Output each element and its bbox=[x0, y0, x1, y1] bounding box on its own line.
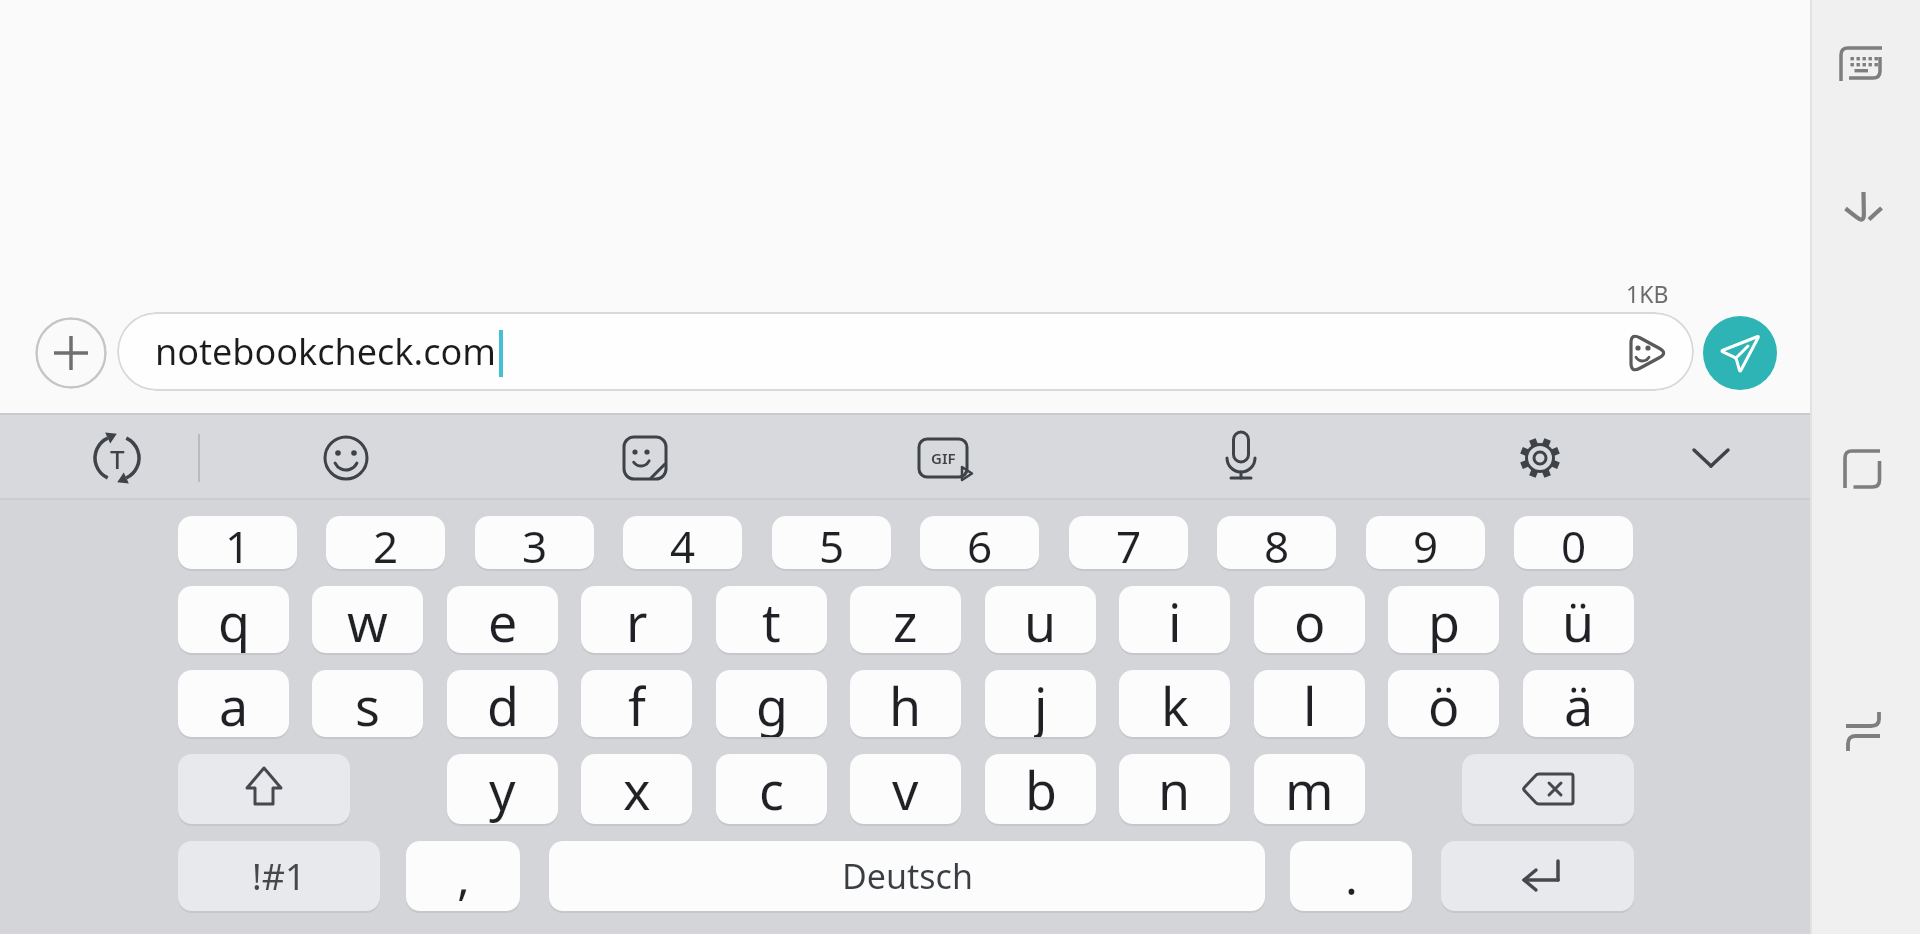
button[interactable] bbox=[1201, 418, 1281, 498]
button[interactable] bbox=[1823, 169, 1903, 249]
button[interactable]: z bbox=[850, 586, 961, 653]
button[interactable]: 6 bbox=[920, 516, 1039, 569]
staticText: T bbox=[110, 441, 125, 476]
staticText: o bbox=[1294, 586, 1326, 653]
staticText: 9 bbox=[1413, 516, 1439, 569]
button[interactable] bbox=[1615, 321, 1679, 385]
button[interactable] bbox=[1823, 691, 1903, 771]
button[interactable] bbox=[1671, 418, 1751, 498]
staticText: u bbox=[1024, 586, 1057, 653]
staticText: n bbox=[1158, 754, 1191, 824]
button[interactable] bbox=[1500, 418, 1580, 498]
button[interactable]: ä bbox=[1523, 670, 1634, 737]
button[interactable]: notebookcheck.com bbox=[117, 312, 1694, 391]
staticText: q bbox=[218, 586, 250, 653]
staticText: 0 bbox=[1561, 516, 1587, 569]
staticText: !#1 bbox=[252, 852, 306, 901]
button[interactable]: 8 bbox=[1217, 516, 1336, 569]
staticText: s bbox=[355, 670, 380, 737]
button[interactable]: w bbox=[312, 586, 423, 653]
button[interactable] bbox=[903, 418, 983, 498]
staticText: z bbox=[893, 586, 918, 653]
button[interactable]: k bbox=[1119, 670, 1230, 737]
button[interactable] bbox=[1462, 754, 1634, 824]
staticText: v bbox=[892, 754, 919, 824]
button[interactable]: h bbox=[850, 670, 961, 737]
button[interactable]: c bbox=[716, 754, 827, 824]
button[interactable]: 5 bbox=[772, 516, 891, 569]
button[interactable]: u bbox=[985, 586, 1096, 653]
button[interactable]: d bbox=[447, 670, 558, 737]
staticText: , bbox=[457, 844, 470, 909]
button[interactable]: f bbox=[581, 670, 692, 737]
staticText: f bbox=[628, 670, 646, 737]
button[interactable]: r bbox=[581, 586, 692, 653]
button[interactable]: n bbox=[1119, 754, 1230, 824]
button[interactable]: ö bbox=[1388, 670, 1499, 737]
button[interactable]: i bbox=[1119, 586, 1230, 653]
staticText: b bbox=[1025, 754, 1057, 824]
staticText: notebookcheck.com bbox=[155, 327, 496, 376]
staticText: x bbox=[623, 754, 651, 824]
button[interactable]: y bbox=[447, 754, 558, 824]
button[interactable]: o bbox=[1254, 586, 1365, 653]
button[interactable]: a bbox=[178, 670, 289, 737]
staticText: . bbox=[1345, 844, 1358, 909]
button[interactable]: 7 bbox=[1069, 516, 1188, 569]
button[interactable]: s bbox=[312, 670, 423, 737]
staticText: 2 bbox=[373, 516, 399, 569]
button[interactable]: 3 bbox=[475, 516, 594, 569]
staticText: 1KB bbox=[1626, 278, 1669, 306]
button[interactable]: e bbox=[447, 586, 558, 653]
button[interactable]: , bbox=[406, 841, 520, 911]
button[interactable]: . bbox=[1290, 841, 1412, 911]
staticText: 3 bbox=[522, 516, 548, 569]
button[interactable] bbox=[1821, 24, 1901, 104]
button[interactable]: x bbox=[581, 754, 692, 824]
staticText: m bbox=[1285, 754, 1334, 824]
staticText: r bbox=[626, 586, 648, 653]
button[interactable]: g bbox=[716, 670, 827, 737]
button[interactable] bbox=[605, 418, 685, 498]
staticText: GIF bbox=[931, 448, 956, 468]
button[interactable]: 4 bbox=[623, 516, 742, 569]
button[interactable]: t bbox=[716, 586, 827, 653]
button[interactable] bbox=[178, 754, 350, 824]
staticText: g bbox=[756, 670, 788, 737]
button[interactable]: 1 bbox=[178, 516, 297, 569]
staticText: i bbox=[1168, 586, 1182, 653]
staticText: d bbox=[487, 670, 519, 737]
staticText: ä bbox=[1564, 670, 1594, 737]
button[interactable]: b bbox=[985, 754, 1096, 824]
button[interactable]: 2 bbox=[326, 516, 445, 569]
button[interactable] bbox=[306, 418, 386, 498]
button[interactable] bbox=[1441, 841, 1634, 911]
staticText: 4 bbox=[670, 516, 696, 569]
button[interactable]: l bbox=[1254, 670, 1365, 737]
button[interactable]: j bbox=[985, 670, 1096, 737]
button[interactable]: v bbox=[850, 754, 961, 824]
staticText: 5 bbox=[819, 516, 845, 569]
staticText: 6 bbox=[967, 516, 993, 569]
staticText: ü bbox=[1562, 586, 1595, 653]
button[interactable]: !#1 bbox=[178, 841, 380, 911]
staticText: e bbox=[488, 586, 518, 653]
staticText: h bbox=[889, 670, 922, 737]
staticText: a bbox=[219, 670, 249, 737]
button[interactable]: p bbox=[1388, 586, 1499, 653]
button[interactable]: ü bbox=[1523, 586, 1634, 653]
button[interactable]: m bbox=[1254, 754, 1365, 824]
button[interactable]: q bbox=[178, 586, 289, 653]
staticText: p bbox=[1428, 586, 1460, 653]
button[interactable] bbox=[35, 317, 107, 389]
button[interactable]: Deutsch bbox=[549, 841, 1265, 911]
staticText: 7 bbox=[1116, 516, 1142, 569]
staticText: c bbox=[759, 754, 784, 824]
button[interactable] bbox=[1703, 316, 1777, 390]
staticText: Deutsch bbox=[842, 853, 973, 899]
button[interactable] bbox=[77, 418, 157, 498]
staticText: 8 bbox=[1264, 516, 1290, 569]
button[interactable] bbox=[1823, 429, 1903, 509]
button[interactable]: 9 bbox=[1366, 516, 1485, 569]
button[interactable]: 0 bbox=[1514, 516, 1633, 569]
